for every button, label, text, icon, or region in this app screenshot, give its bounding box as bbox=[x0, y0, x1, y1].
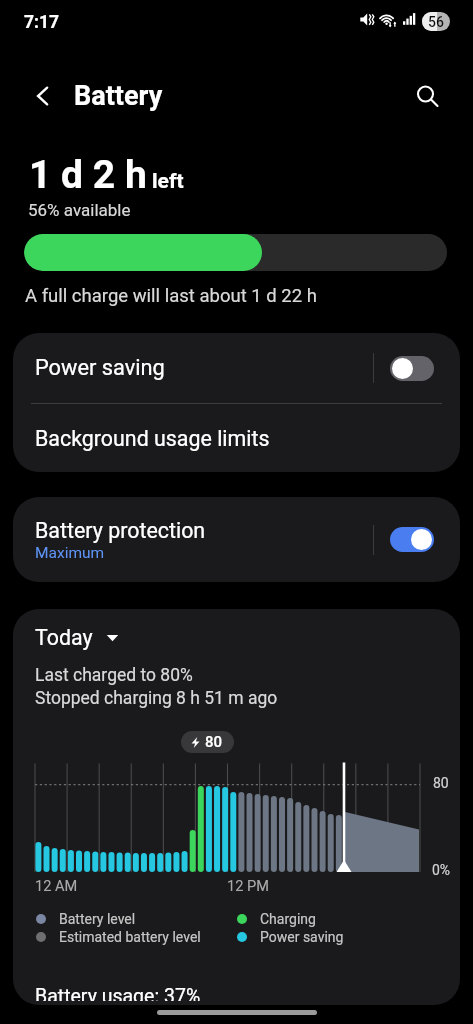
staticText: Maximum bbox=[35, 544, 105, 562]
staticText: Background usage limits bbox=[35, 426, 270, 451]
staticText: 80 bbox=[205, 733, 223, 751]
button[interactable]: Background usage limits bbox=[13, 404, 460, 472]
staticText: Battery bbox=[74, 80, 163, 112]
button[interactable]: Search bbox=[407, 76, 447, 116]
staticText: Power saving bbox=[260, 929, 344, 945]
staticText: 7:17 bbox=[24, 12, 60, 33]
staticText: 56 bbox=[428, 14, 444, 30]
staticText: A full charge will last about 1 d 22 h bbox=[25, 285, 317, 307]
button[interactable]: Toggle on bbox=[390, 527, 434, 552]
staticText: Estimated battery level bbox=[59, 929, 201, 945]
staticText: 12 PM bbox=[227, 877, 269, 894]
button[interactable]: Battery protection bbox=[13, 497, 460, 582]
button[interactable]: Toggle off bbox=[390, 356, 434, 381]
staticText: 0% bbox=[432, 862, 451, 878]
button[interactable]: Back bbox=[23, 76, 63, 116]
staticText: Last charged to 80% bbox=[35, 665, 193, 686]
button[interactable]: Power saving bbox=[13, 333, 460, 403]
staticText: Battery usage: 37% bbox=[35, 985, 201, 1001]
staticText: 12 AM bbox=[35, 877, 78, 894]
staticText: Today bbox=[35, 625, 93, 650]
button[interactable]: Today bbox=[35, 625, 119, 650]
staticText: Stopped charging 8 h 51 m ago bbox=[35, 688, 278, 709]
staticText: Battery level bbox=[59, 911, 136, 927]
staticText: 1 d 2 h bbox=[29, 152, 147, 198]
staticText: Charging bbox=[260, 911, 316, 927]
staticText: 80 bbox=[433, 775, 449, 791]
staticText: left bbox=[152, 169, 184, 194]
staticText: 56% available bbox=[28, 200, 131, 220]
staticText: Battery protection bbox=[35, 518, 206, 543]
staticText: Power saving bbox=[35, 355, 165, 381]
